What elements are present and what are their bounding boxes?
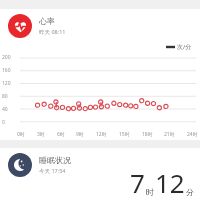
staticText: 9时 xyxy=(76,131,84,138)
staticText: 昨天 08:11 xyxy=(39,28,66,36)
staticText: 今天 17:54 xyxy=(39,167,66,175)
staticText: 18时 xyxy=(142,131,153,138)
staticText: 12时 xyxy=(96,131,107,138)
staticText: 21时 xyxy=(164,131,175,138)
staticText: 心率 xyxy=(39,16,55,26)
staticText: 6时 xyxy=(57,131,65,138)
button[interactable]: 睡眠状况 xyxy=(0,148,200,200)
staticText: 7 xyxy=(130,165,145,200)
staticText: 12 xyxy=(155,165,185,200)
staticText: 200 xyxy=(2,54,11,61)
staticText: 睡眠状况 xyxy=(39,155,71,165)
staticText: 分 xyxy=(186,187,194,197)
staticText: 0时 xyxy=(17,131,25,138)
button[interactable]: 心率 xyxy=(0,9,200,140)
staticText: 24时 xyxy=(187,131,198,138)
staticText: 15时 xyxy=(119,131,130,138)
staticText: 80 xyxy=(2,93,8,100)
staticText: 160 xyxy=(2,67,11,74)
staticText: 40 xyxy=(2,106,8,113)
staticText: 3时 xyxy=(37,131,45,138)
staticText: 次/分 xyxy=(177,43,192,51)
staticText: 120 xyxy=(2,80,11,87)
staticText: 0 xyxy=(2,119,5,126)
staticText: 时 xyxy=(146,187,154,197)
